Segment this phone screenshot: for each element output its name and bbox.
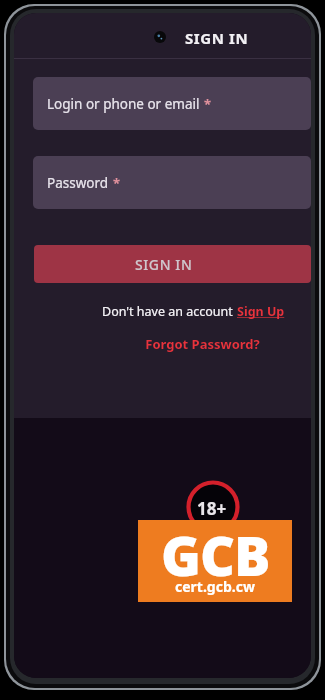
staticText: Don't have an account (102, 303, 237, 320)
button[interactable]: GCB certification cert.gcb.cw (138, 520, 292, 602)
button[interactable]: Forgot Password? (145, 335, 260, 353)
button[interactable]: SIGN IN (34, 245, 311, 283)
staticText: Password (47, 174, 109, 192)
button[interactable]: Login or phone or email (33, 77, 311, 130)
staticText: GCB (161, 518, 270, 592)
staticText: 18+ (197, 497, 227, 520)
staticText: SIGN IN (135, 255, 193, 274)
button[interactable]: Password (33, 156, 311, 209)
staticText: cert.gcb.cw (175, 577, 255, 596)
button[interactable]: Don't have an account (14, 301, 311, 321)
staticText: * (113, 174, 121, 192)
staticText: * (204, 95, 212, 113)
staticText: SIGN IN (185, 28, 249, 48)
staticText: Sign Up (237, 303, 285, 320)
staticText: Login or phone or email (47, 95, 200, 113)
